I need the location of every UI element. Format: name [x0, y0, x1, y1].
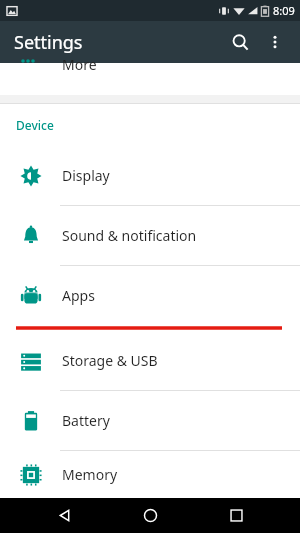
button[interactable]: Memory — [0, 451, 300, 498]
button[interactable]: Battery — [0, 391, 300, 451]
staticText: Memory — [62, 465, 118, 484]
staticText: More — [62, 55, 97, 74]
button[interactable]: Apps — [0, 266, 300, 325]
staticText: Device — [16, 117, 54, 133]
button[interactable]: Display — [0, 146, 300, 206]
staticText: 8:09 — [273, 3, 295, 18]
button[interactable]: Recent apps — [214, 498, 258, 533]
staticText: Settings — [14, 30, 83, 55]
button[interactable]: More options — [258, 25, 292, 59]
button[interactable]: Back — [42, 498, 86, 533]
button[interactable]: More — [0, 63, 300, 95]
button[interactable]: Sound & notification — [0, 206, 300, 266]
staticText: Display — [62, 166, 110, 185]
staticText: Storage & USB — [62, 351, 158, 370]
staticText: Apps — [62, 286, 95, 305]
staticText: Sound & notification — [62, 226, 197, 245]
staticText: Battery — [62, 411, 110, 430]
button[interactable]: Home — [128, 498, 172, 533]
button[interactable]: Storage & USB — [0, 331, 300, 391]
button[interactable]: Search — [222, 24, 258, 60]
